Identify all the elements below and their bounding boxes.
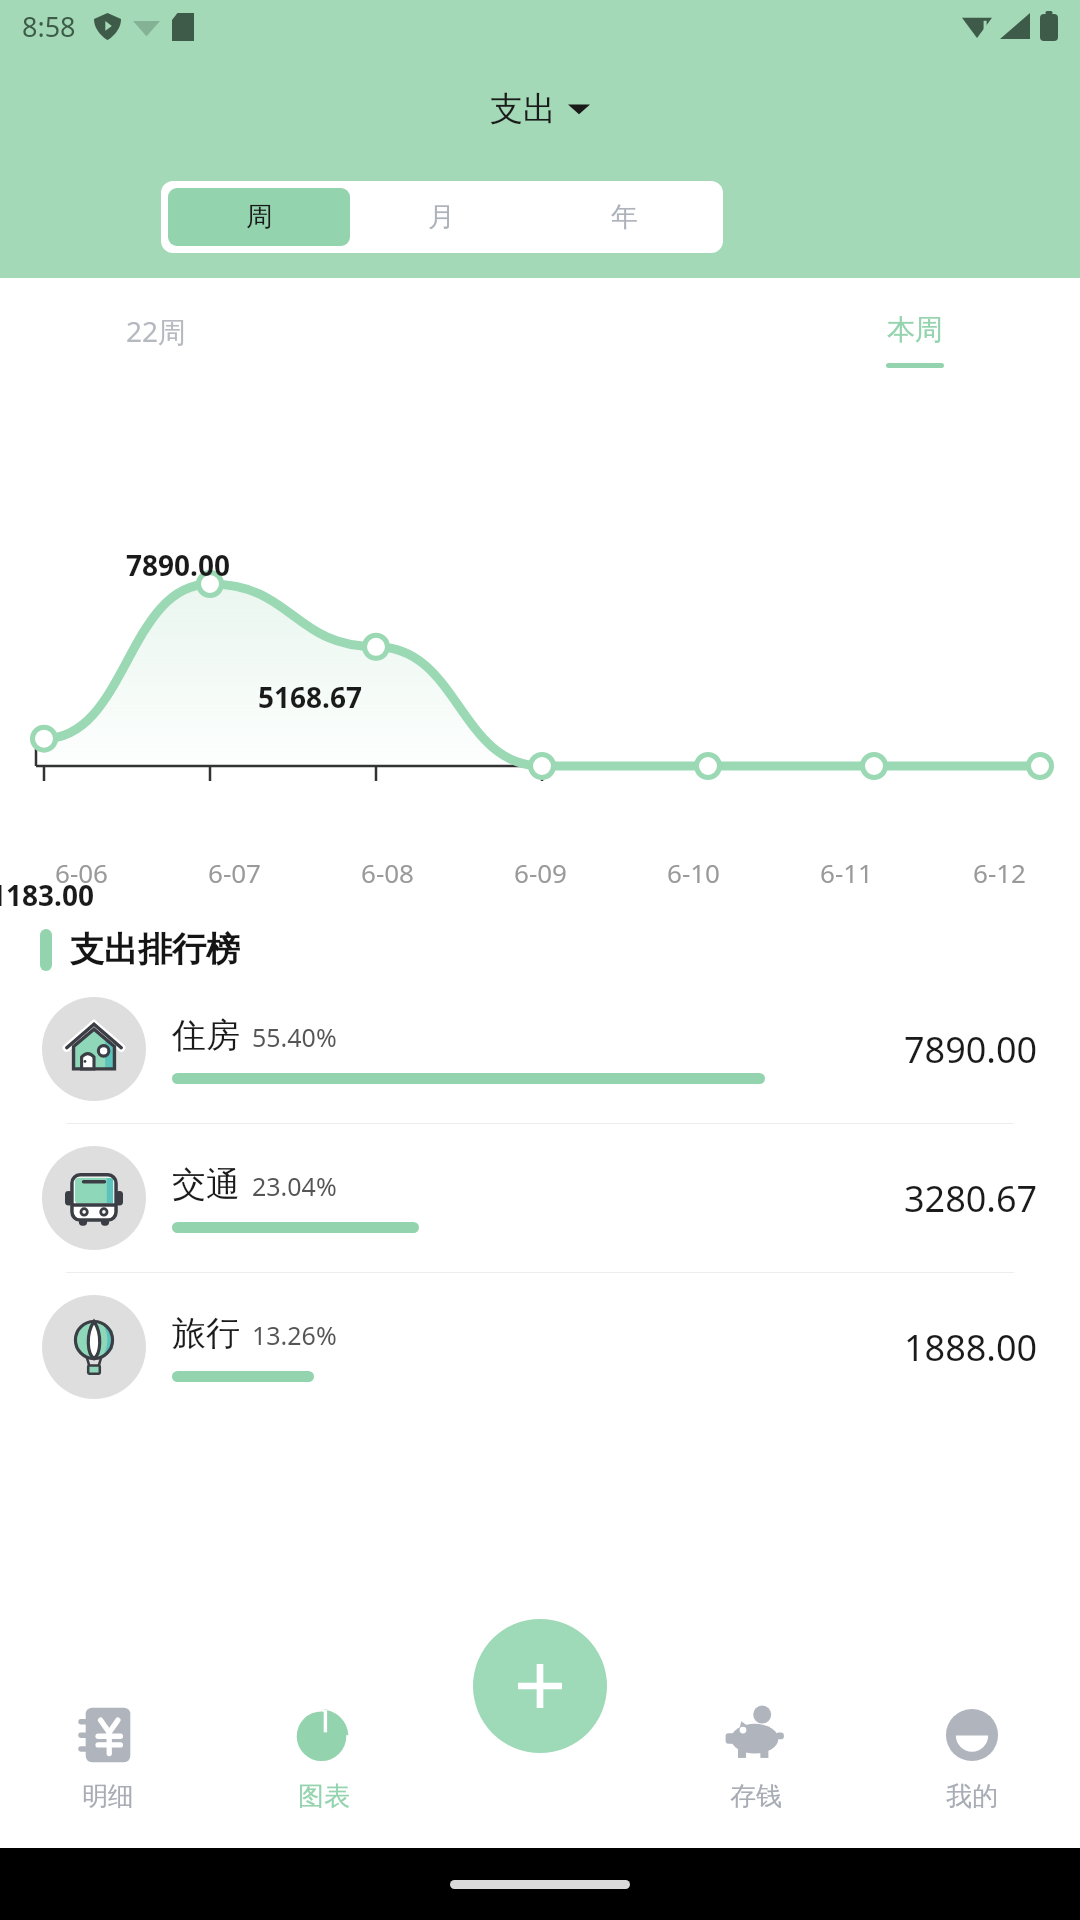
staticText: 周: [246, 200, 273, 234]
staticText: 6-07: [208, 855, 261, 890]
button[interactable]: Add record: [473, 1619, 607, 1753]
staticText: 6-08: [361, 855, 414, 890]
staticText: 支出: [490, 88, 556, 130]
button[interactable]: 交通: [0, 1123, 1080, 1272]
staticText: 7890.00: [126, 546, 230, 584]
staticText: 7890.00: [904, 1025, 1038, 1074]
button[interactable]: 住房: [0, 975, 1080, 1123]
staticText: 存钱: [730, 1780, 782, 1813]
staticText: 月: [428, 200, 455, 234]
staticText: 年: [611, 200, 638, 234]
button[interactable]: 我的: [864, 1678, 1080, 1848]
button[interactable]: 存钱: [648, 1678, 864, 1848]
staticText: 6-06: [55, 855, 108, 890]
button[interactable]: 22周: [118, 304, 195, 358]
staticText: 5168.67: [258, 678, 362, 716]
staticText: 6-12: [973, 855, 1026, 890]
button[interactable]: 月: [350, 188, 533, 246]
staticText: 本周: [887, 312, 943, 347]
button[interactable]: 支出: [484, 84, 596, 134]
button[interactable]: 年: [533, 188, 716, 246]
staticText: 1888.00: [904, 1323, 1038, 1372]
staticText: 8:58: [22, 8, 76, 45]
staticText: 55.40%: [252, 1020, 337, 1054]
staticText: 13.26%: [252, 1318, 337, 1352]
staticText: 6-10: [667, 855, 720, 890]
staticText: 图表: [298, 1780, 350, 1813]
staticText: 住房: [172, 1014, 240, 1057]
staticText: 支出排行榜: [70, 928, 240, 971]
button[interactable]: 明细: [0, 1678, 216, 1848]
staticText: 22周: [126, 312, 187, 350]
button[interactable]: 旅行: [0, 1272, 1080, 1421]
staticText: 明细: [82, 1780, 134, 1813]
staticText: 旅行: [172, 1312, 240, 1355]
staticText: 23.04%: [252, 1169, 337, 1203]
staticText: 6-11: [820, 855, 873, 890]
staticText: 3280.67: [904, 1174, 1038, 1223]
button[interactable]: 周: [168, 188, 350, 246]
staticText: 1183.00: [0, 876, 94, 914]
staticText: 交通: [172, 1163, 240, 1206]
button[interactable]: 图表: [216, 1678, 432, 1848]
staticText: 6-09: [514, 855, 567, 890]
staticText: 我的: [946, 1780, 998, 1813]
button[interactable]: 本周: [878, 304, 952, 376]
